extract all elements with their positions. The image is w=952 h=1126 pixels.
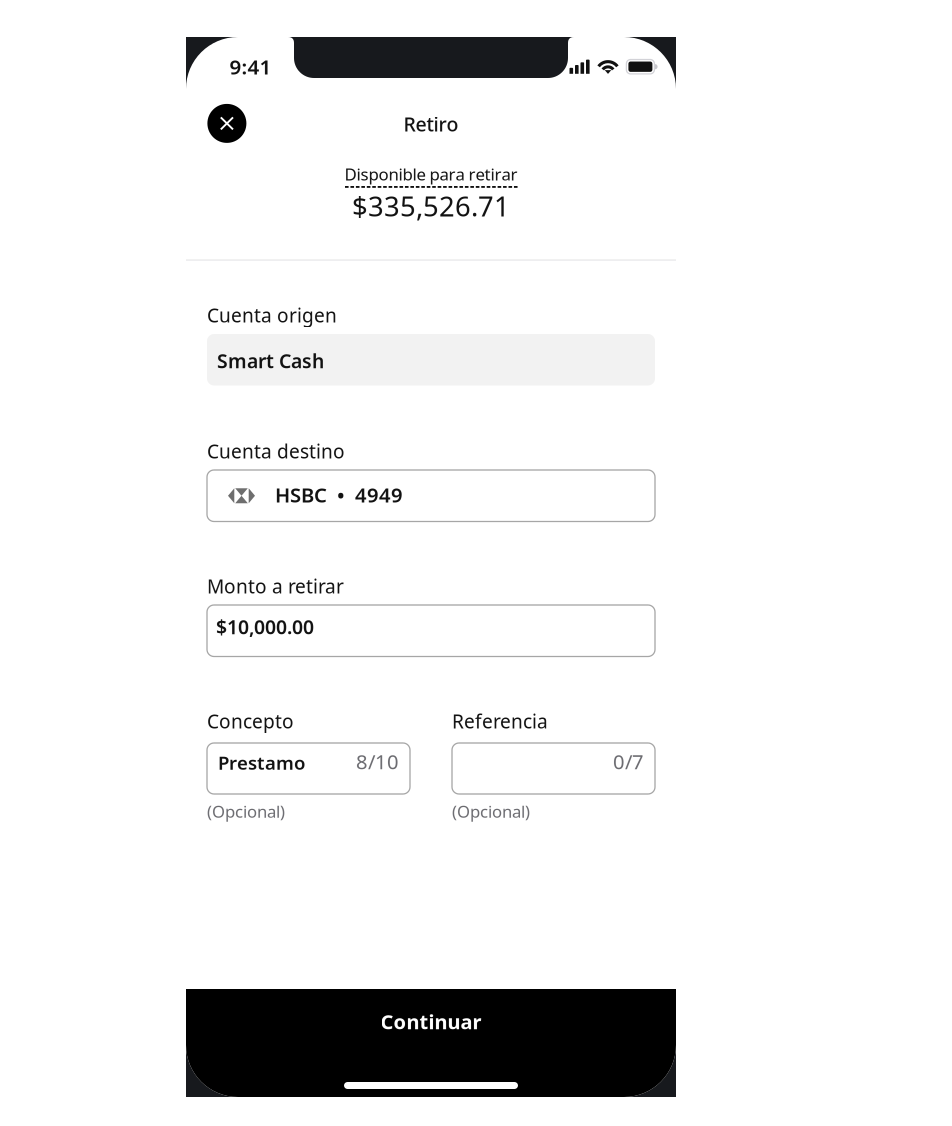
staticText: Cuenta origen: [207, 302, 337, 328]
staticText: HSBC • 4949: [275, 481, 403, 508]
staticText: Smart Cash: [217, 348, 324, 374]
staticText: (Opcional): [452, 800, 530, 823]
button[interactable]: Close: [207, 104, 246, 143]
staticText: Continuar: [380, 1008, 481, 1035]
button[interactable]: $10,000.00: [207, 605, 655, 656]
staticText: Prestamo: [218, 750, 305, 775]
staticText: Retiro: [403, 111, 458, 137]
staticText: Referencia: [452, 708, 548, 734]
staticText: Monto a retirar: [207, 573, 344, 599]
staticText: $335,526.71: [352, 187, 510, 225]
staticText: 0/7: [613, 748, 644, 775]
button[interactable]: HSBC • 4949: [207, 470, 655, 521]
staticText: Concepto: [207, 708, 294, 734]
staticText: 8/10: [356, 748, 399, 775]
staticText: Disponible para retirar: [344, 163, 517, 185]
button[interactable]: 0/7: [452, 743, 655, 794]
staticText: Cuenta destino: [207, 438, 345, 464]
staticText: (Opcional): [207, 800, 285, 823]
staticText: 9:41: [229, 52, 271, 80]
button[interactable]: Prestamo: [207, 743, 410, 794]
button[interactable]: Continuar: [186, 989, 676, 1097]
button[interactable]: Smart Cash: [207, 334, 655, 385]
staticText: $10,000.00: [216, 614, 314, 640]
